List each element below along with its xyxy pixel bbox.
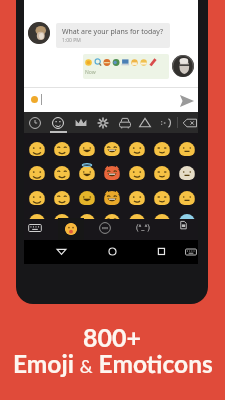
button[interactable]: Category 8	[182, 115, 198, 131]
button[interactable]: Emoji 23	[76, 212, 98, 230]
button[interactable]: Emoji 6	[176, 140, 198, 158]
button[interactable]: Emoji 25	[126, 212, 148, 230]
button[interactable]: Emoji 21	[26, 212, 48, 230]
button[interactable]: Category 1	[27, 115, 43, 131]
button[interactable]: Emoji 18	[126, 189, 148, 207]
button[interactable]: Emoji 4	[126, 140, 148, 158]
button[interactable]: Category 6	[137, 115, 153, 131]
button[interactable]: Emoji key	[65, 223, 77, 235]
button[interactable]: Emoji 26	[151, 212, 173, 230]
button[interactable]: Emoji 19	[151, 189, 173, 207]
button[interactable]: Emoji 24	[101, 212, 123, 230]
button[interactable]: Emoji 22	[51, 212, 73, 230]
button[interactable]: Category 5	[117, 115, 133, 131]
button[interactable]: Category 7	[158, 115, 174, 131]
button[interactable]: Back	[55, 245, 68, 258]
button[interactable]: Emoji 16	[76, 189, 98, 207]
button[interactable]: Emoji 17	[101, 189, 123, 207]
button[interactable]: Emoticons	[136, 224, 156, 235]
staticText: 800+	[83, 322, 142, 352]
button[interactable]: Emoji 9	[76, 164, 98, 182]
button[interactable]: Emoji 5	[151, 140, 173, 158]
button[interactable]: Keyboard	[185, 246, 197, 258]
button[interactable]: Recent apps	[155, 245, 168, 258]
button[interactable]: Send	[179, 93, 195, 109]
button[interactable]: What are your plans for today?	[56, 23, 170, 48]
button[interactable]: GIF	[178, 219, 189, 231]
staticText: 1:00 PM	[62, 37, 81, 44]
button[interactable]: Emoji 8	[51, 164, 73, 182]
button[interactable]: Emoji 1	[51, 140, 73, 158]
button[interactable]: Emoji 10	[101, 164, 123, 182]
button[interactable]: Emoji 27	[176, 212, 198, 230]
button[interactable]: Emoji 11	[126, 164, 148, 182]
button[interactable]: Home	[106, 245, 119, 258]
button[interactable]: Now	[83, 54, 169, 79]
staticText: Emoji & Emoticons	[13, 349, 213, 378]
button[interactable]: Letters keyboard	[99, 222, 111, 234]
button[interactable]: Category 3	[73, 115, 89, 131]
button[interactable]: Switch keyboard	[28, 221, 42, 235]
button[interactable]: Category 4	[95, 115, 111, 131]
button[interactable]: Emoji	[31, 96, 38, 103]
button[interactable]: Emoji 0	[26, 140, 48, 158]
button[interactable]: Emoji 12	[151, 164, 173, 182]
button[interactable]: Emoji 13	[176, 164, 198, 182]
staticText: Now	[85, 69, 96, 76]
button[interactable]: Emoji 2	[76, 140, 98, 158]
button[interactable]: Emoji 15	[51, 189, 73, 207]
button[interactable]: Emoji 3	[101, 140, 123, 158]
staticText: (^_^)	[136, 224, 150, 232]
button[interactable]: Emoji 7	[26, 164, 48, 182]
button[interactable]: Category 2	[50, 115, 66, 131]
button[interactable]: Emoji 14	[26, 189, 48, 207]
button[interactable]: Emoji 20	[176, 189, 198, 207]
staticText: What are your plans for today?	[62, 27, 164, 37]
